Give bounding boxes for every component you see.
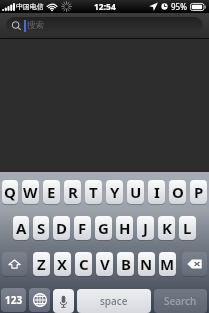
staticText: Z xyxy=(37,254,46,274)
button[interactable]: D xyxy=(53,216,70,240)
button[interactable]: V xyxy=(96,252,113,276)
button[interactable]: Z xyxy=(33,252,50,276)
staticText: J xyxy=(143,218,148,238)
button[interactable]: C xyxy=(75,252,92,276)
staticText: 搜索 xyxy=(27,20,45,31)
staticText: Q xyxy=(4,182,16,202)
staticText: W xyxy=(23,182,38,202)
staticText: D xyxy=(56,218,67,238)
button[interactable]: U xyxy=(127,180,144,204)
staticText: I xyxy=(154,182,160,202)
staticText: U xyxy=(130,182,142,202)
staticText: M xyxy=(160,254,175,274)
button[interactable]: X xyxy=(54,252,71,276)
staticText: S xyxy=(37,218,46,238)
button[interactable]: 搜索 xyxy=(6,17,203,34)
staticText: K xyxy=(162,218,172,238)
staticText: E xyxy=(47,182,56,202)
button[interactable]: J xyxy=(137,216,154,240)
button[interactable]: H xyxy=(116,216,133,240)
staticText: C xyxy=(79,254,89,274)
other: Backspace xyxy=(182,252,207,277)
other: Shift xyxy=(2,252,27,277)
staticText: F xyxy=(78,218,87,238)
staticText: O xyxy=(172,182,184,202)
button[interactable] xyxy=(182,252,207,276)
staticText: Search xyxy=(164,294,197,308)
button[interactable]: L xyxy=(179,216,196,240)
staticText: B xyxy=(121,254,131,274)
button[interactable]: G xyxy=(95,216,112,240)
staticText: A xyxy=(16,218,27,238)
staticText: H xyxy=(119,218,131,238)
button[interactable]: 123 xyxy=(1,288,26,312)
staticText: X xyxy=(57,254,68,274)
staticText: 中国电信 xyxy=(16,2,44,11)
button[interactable]: S xyxy=(33,216,49,240)
button[interactable] xyxy=(29,288,50,312)
staticText: 123 xyxy=(5,293,23,307)
staticText: 95% xyxy=(171,1,187,12)
button[interactable] xyxy=(2,252,27,276)
staticText: G xyxy=(98,218,109,238)
button[interactable]: P xyxy=(190,180,207,204)
button[interactable]: N xyxy=(138,252,155,276)
button[interactable]: O xyxy=(169,180,186,204)
staticText: N xyxy=(140,254,153,274)
staticText: V xyxy=(100,254,110,274)
button[interactable]: Dictate xyxy=(53,289,74,313)
staticText: space xyxy=(100,294,128,308)
button[interactable]: I xyxy=(148,180,165,204)
button[interactable]: A xyxy=(13,216,29,240)
button[interactable]: F xyxy=(74,216,91,240)
staticText: P xyxy=(194,182,204,202)
staticText: T xyxy=(89,182,98,202)
staticText: Y xyxy=(110,182,120,202)
button[interactable]: E xyxy=(43,180,60,204)
button[interactable]: B xyxy=(117,252,134,276)
staticText: L xyxy=(183,218,192,238)
button[interactable]: Q xyxy=(2,180,18,204)
other: Change keyboard xyxy=(29,288,50,313)
button[interactable]: space xyxy=(77,289,151,313)
button[interactable]: W xyxy=(22,180,39,204)
button[interactable]: M xyxy=(159,252,176,276)
button[interactable]: T xyxy=(85,180,102,204)
staticText: R xyxy=(68,182,78,202)
staticText: 12:54 xyxy=(94,1,116,13)
button[interactable]: K xyxy=(158,216,175,240)
button[interactable]: Y xyxy=(106,180,123,204)
button[interactable]: R xyxy=(64,180,81,204)
button[interactable]: Search xyxy=(154,289,207,313)
